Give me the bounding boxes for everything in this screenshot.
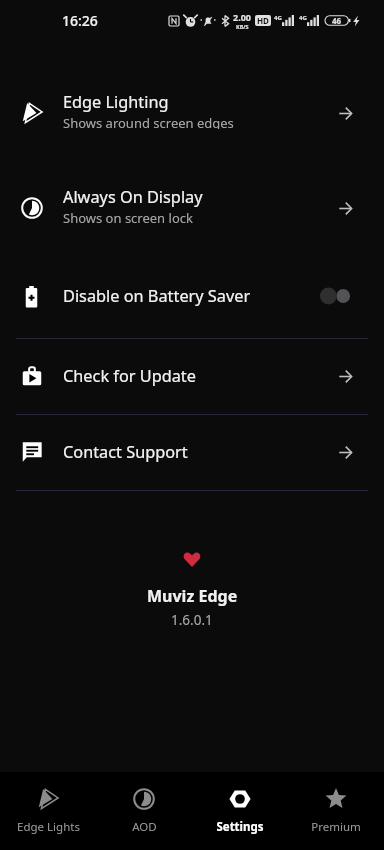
button[interactable]: Disable on Battery Saver toggle [320,287,350,305]
staticText: 4G [299,14,307,22]
button[interactable]: Settings [192,772,288,850]
staticText: KB/S [236,23,249,30]
other: Open [339,202,352,215]
button[interactable]: Disable on Battery Saver [0,279,384,313]
other: Open [339,370,352,383]
staticText: 46 [332,15,342,26]
other: Open [339,107,352,120]
staticText: Settings [216,819,264,835]
staticText: Contact Support [63,441,188,463]
staticText: Shows on screen lock [63,209,193,224]
staticText: Muviz Edge [147,585,238,607]
staticText: Always On Display [63,186,203,208]
staticText: Check for Update [63,365,196,387]
button[interactable]: Edge Lights [0,772,96,850]
staticText: 2.00 [233,11,251,23]
staticText: 16:26 [62,11,98,30]
staticText: 4G [274,14,282,22]
staticText: 1.6.0.1 [171,611,213,629]
staticText: Premium [311,819,361,835]
staticText: Edge Lighting [63,91,169,113]
staticText: Edge Lights [17,819,80,835]
button[interactable]: Premium [288,772,384,850]
button[interactable]: Always On Display [0,186,384,224]
staticText: Shows around screen edges [63,114,234,129]
button[interactable]: Edge Lighting [0,91,384,129]
staticText: AOD [132,819,157,835]
staticText: Disable on Battery Saver [63,285,320,307]
button[interactable]: AOD [96,772,192,850]
other: Open [339,446,352,459]
staticText: HD [257,15,269,26]
button[interactable]: Contact Support [0,437,384,467]
button[interactable]: Check for Update [0,361,384,391]
